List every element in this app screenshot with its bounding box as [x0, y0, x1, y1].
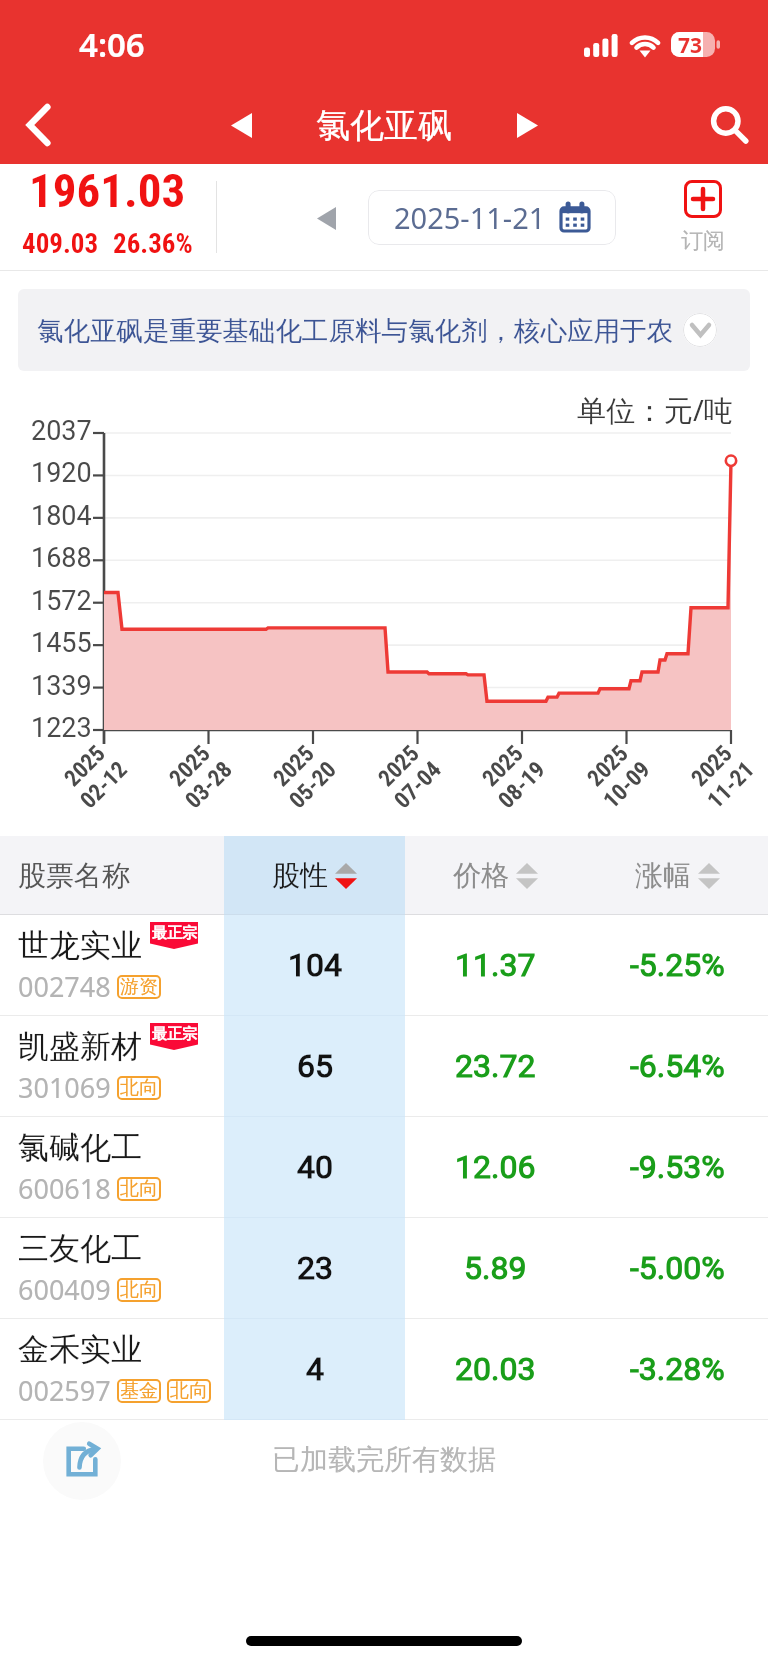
button[interactable]: Next: [496, 94, 558, 156]
button[interactable]: 金禾实业: [0, 1319, 768, 1419]
staticText: 1223: [31, 712, 92, 744]
staticText: 北向: [170, 1379, 208, 1403]
staticText: 1572: [31, 585, 92, 617]
button[interactable]: 涨幅: [586, 836, 768, 914]
staticText: 20.03: [455, 1350, 536, 1388]
staticText: 世龙实业: [18, 926, 142, 965]
staticText: 409.03: [22, 228, 99, 260]
staticText: 游资: [120, 975, 158, 999]
button[interactable]: 三友化工: [0, 1218, 768, 1318]
staticText: 600618: [18, 1170, 111, 1207]
staticText: 002597: [18, 1372, 111, 1409]
staticText: 北向: [120, 1177, 158, 1201]
staticText: 最正宗: [152, 1025, 197, 1044]
button[interactable]: 氯化亚砜是重要基础化工原料与氯化剂，核心应用于农: [18, 289, 750, 371]
button[interactable]: 价格: [405, 836, 586, 914]
staticText: -5.25%: [630, 946, 725, 984]
staticText: 2025 02-12: [56, 737, 133, 814]
staticText: 北向: [120, 1076, 158, 1100]
button[interactable]: 订阅: [681, 180, 725, 255]
staticText: 5.89: [464, 1249, 527, 1287]
staticText: 1339: [31, 670, 92, 702]
staticText: 23.72: [455, 1047, 536, 1085]
staticText: 订阅: [681, 227, 725, 255]
button[interactable]: 股性: [224, 836, 405, 914]
staticText: 4:06: [79, 22, 145, 67]
staticText: 65: [297, 1047, 333, 1085]
staticText: 600409: [18, 1271, 111, 1308]
staticText: 2025 05-20: [265, 737, 342, 814]
staticText: -9.53%: [630, 1148, 725, 1186]
button[interactable]: 氯碱化工: [0, 1117, 768, 1217]
button[interactable]: Share: [43, 1422, 121, 1500]
staticText: 最正宗: [152, 924, 197, 943]
staticText: 股性: [272, 858, 328, 893]
button[interactable]: 世龙实业: [0, 915, 768, 1015]
staticText: 2025 10-09: [579, 737, 656, 814]
staticText: 已加载完所有数据: [272, 1442, 496, 1477]
staticText: 2025 03-28: [161, 737, 238, 814]
staticText: 单位：元/吨: [577, 390, 733, 430]
staticText: 氯碱化工: [18, 1128, 142, 1167]
button[interactable]: 凯盛新材: [0, 1016, 768, 1116]
button[interactable]: Search: [690, 86, 768, 164]
staticText: 1804: [31, 500, 92, 532]
staticText: -5.00%: [630, 1249, 725, 1287]
staticText: 基金: [120, 1379, 158, 1403]
staticText: 002748: [18, 968, 111, 1005]
staticText: 26.36%: [113, 228, 193, 260]
staticText: 2025-11-21: [394, 198, 546, 237]
staticText: 凯盛新材: [18, 1027, 142, 1066]
staticText: 涨幅: [635, 858, 691, 893]
staticText: 40: [297, 1148, 333, 1186]
staticText: 1961.03: [29, 163, 186, 218]
staticText: 1688: [31, 542, 92, 574]
staticText: 12.06: [455, 1148, 536, 1186]
staticText: 104: [288, 946, 342, 984]
staticText: 金禾实业: [18, 1330, 142, 1369]
staticText: 1455: [31, 627, 92, 659]
staticText: 301069: [18, 1069, 111, 1106]
staticText: -6.54%: [630, 1047, 725, 1085]
staticText: 2025 07-04: [370, 737, 447, 814]
button[interactable]: 2025-11-21: [368, 190, 616, 245]
staticText: 2037: [31, 415, 92, 447]
button[interactable]: Previous date: [304, 196, 348, 240]
staticText: 三友化工: [18, 1229, 142, 1268]
staticText: 氯化亚砜: [316, 104, 452, 147]
staticText: 2025 08-19: [474, 737, 551, 814]
staticText: 氯化亚砜是重要基础化工原料与氯化剂，核心应用于农: [37, 314, 673, 347]
staticText: 股票名称: [18, 858, 130, 893]
staticText: 11.37: [455, 946, 536, 984]
staticText: 4: [306, 1350, 324, 1388]
staticText: -3.28%: [630, 1350, 725, 1388]
button[interactable]: Back: [0, 86, 78, 164]
button[interactable]: 股票名称: [0, 836, 224, 914]
staticText: 2025 11-21: [683, 737, 760, 814]
button[interactable]: Previous: [210, 94, 272, 156]
staticText: 23: [297, 1249, 333, 1287]
staticText: 北向: [120, 1278, 158, 1302]
staticText: 价格: [453, 858, 509, 893]
staticText: 73: [678, 31, 703, 56]
staticText: 1920: [31, 457, 92, 489]
